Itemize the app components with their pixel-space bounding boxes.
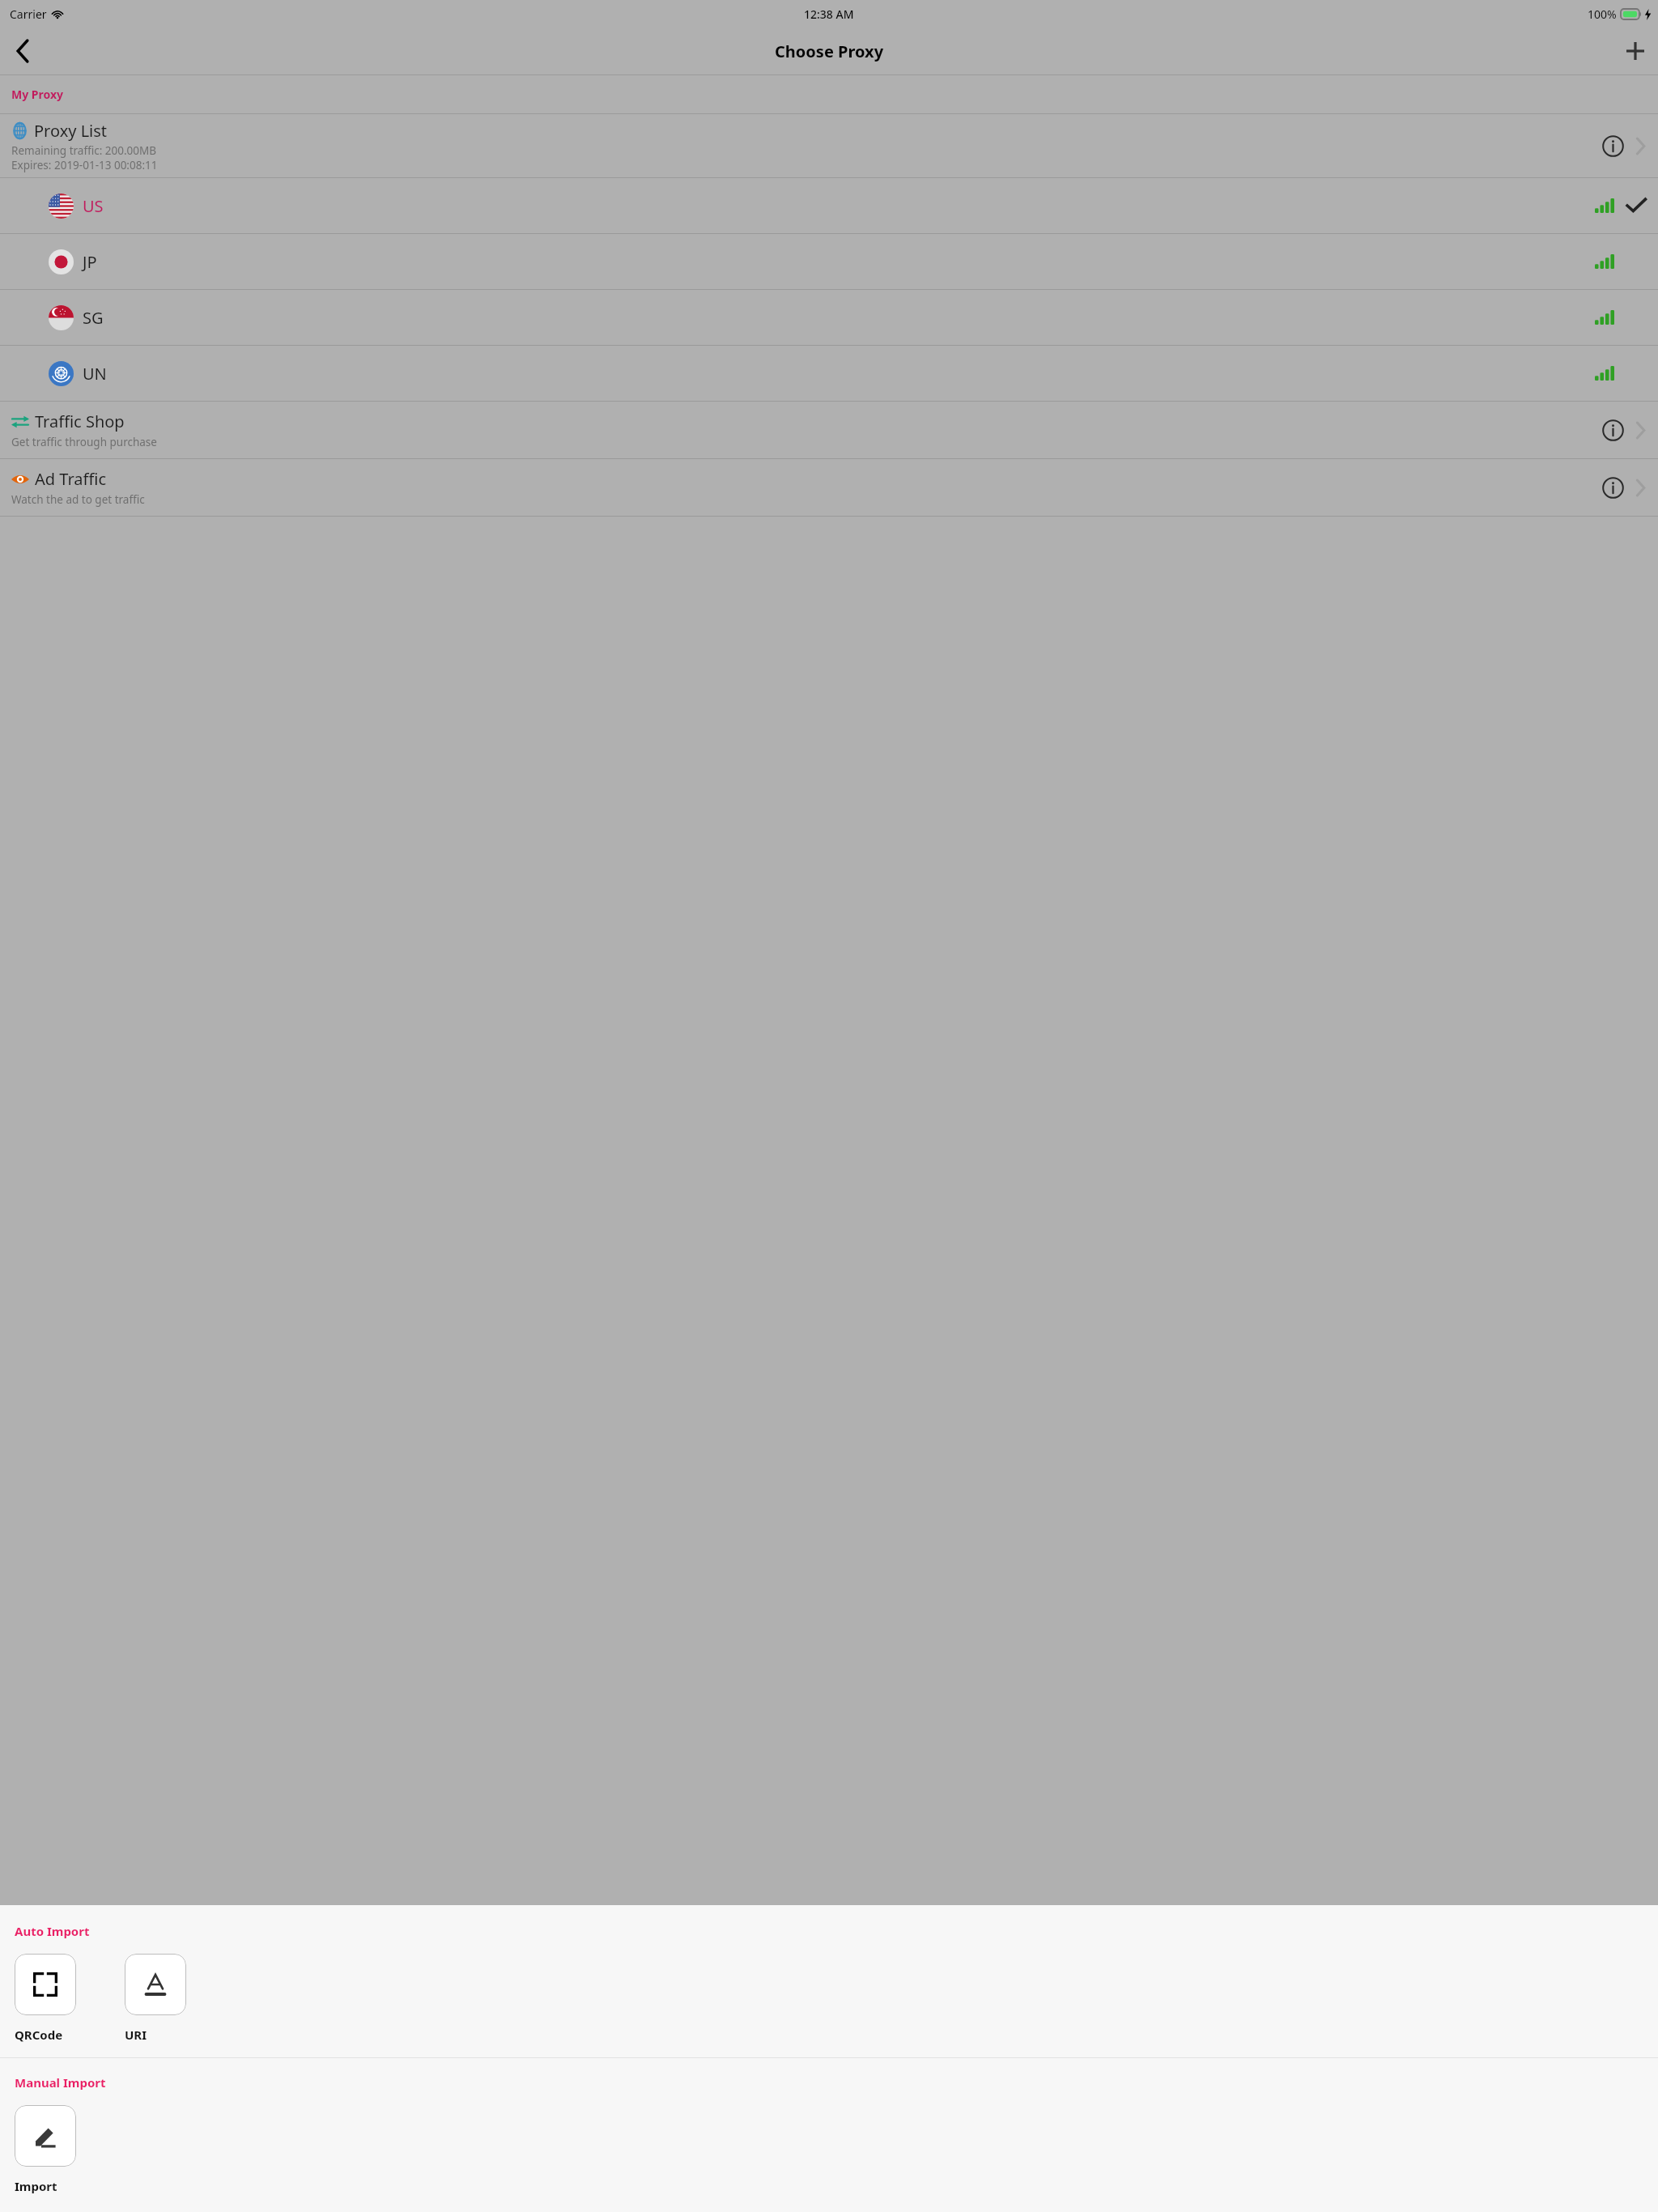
button[interactable]: UN <box>0 346 1658 401</box>
staticText: Choose Proxy <box>775 40 884 62</box>
staticText: Expires: 2019-01-13 00:08:11 <box>11 158 158 172</box>
staticText: URI <box>125 2027 147 2043</box>
staticText: Remaining traffic: 200.00MB <box>11 143 157 158</box>
button[interactable]: Proxy List <box>0 114 1658 177</box>
button[interactable]: Back <box>0 28 45 74</box>
button[interactable]: Info <box>1599 132 1626 160</box>
button[interactable]: Add <box>1613 28 1658 74</box>
button[interactable]: Info <box>1599 474 1626 501</box>
staticText: 12:38 AM <box>804 6 854 22</box>
staticText: QRCode <box>15 2027 63 2043</box>
staticText: SG <box>83 307 104 329</box>
staticText: JP <box>83 251 97 273</box>
button[interactable]: US <box>0 178 1658 233</box>
staticText: Auto Import <box>15 1923 90 1939</box>
staticText: Carrier <box>10 6 47 22</box>
staticText: Manual Import <box>15 2074 106 2091</box>
staticText: Get traffic through purchase <box>11 435 157 449</box>
button[interactable]: JP <box>0 234 1658 289</box>
button[interactable]: Traffic Shop <box>0 402 1658 458</box>
staticText: Ad Traffic <box>35 468 106 490</box>
button[interactable]: QRCode <box>15 1954 76 2043</box>
button[interactable]: Import <box>15 2105 76 2194</box>
button[interactable]: Ad Traffic <box>0 459 1658 516</box>
staticText: Watch the ad to get traffic <box>11 492 145 507</box>
staticText: UN <box>83 363 107 385</box>
staticText: My Proxy <box>11 87 64 102</box>
button[interactable]: Info <box>1599 416 1626 444</box>
staticText: Import <box>15 2178 57 2194</box>
staticText: Traffic Shop <box>35 410 125 432</box>
button[interactable]: URI <box>125 1954 186 2043</box>
staticText: US <box>83 195 104 217</box>
staticText: 100% <box>1588 6 1617 22</box>
button[interactable]: SG <box>0 290 1658 345</box>
staticText: Proxy List <box>34 120 108 142</box>
